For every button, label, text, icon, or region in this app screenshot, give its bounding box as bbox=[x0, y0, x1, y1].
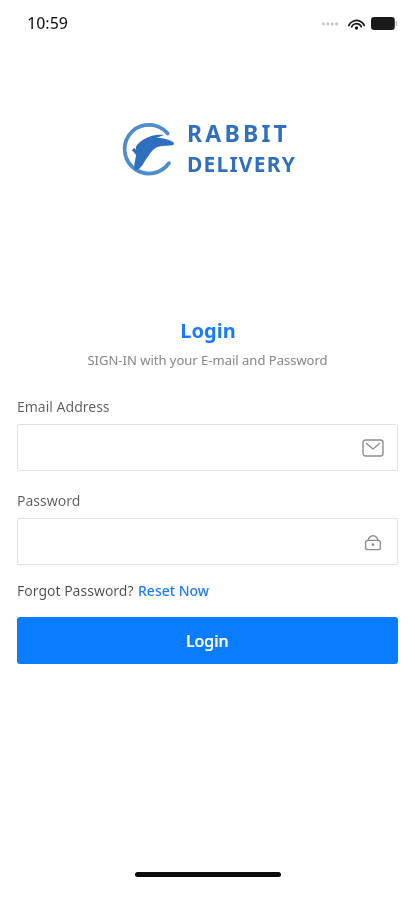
button[interactable]: Reset Now bbox=[138, 581, 210, 600]
staticText: Login bbox=[186, 630, 229, 652]
button[interactable]: Email address field bbox=[17, 424, 398, 471]
staticText: DELIVERY bbox=[187, 150, 296, 179]
staticText: Email Address bbox=[17, 397, 110, 416]
staticText: 10:59 bbox=[27, 12, 68, 34]
button[interactable]: Password field bbox=[17, 518, 398, 565]
staticText: Reset Now bbox=[138, 581, 210, 600]
button[interactable]: Login bbox=[17, 617, 398, 664]
staticText: Login bbox=[180, 317, 236, 344]
staticText: Forgot Password? bbox=[17, 581, 138, 600]
staticText: RABBIT bbox=[187, 117, 291, 148]
staticText: SIGN-IN with your E-mail and Password bbox=[87, 351, 328, 369]
staticText: Password bbox=[17, 491, 81, 510]
